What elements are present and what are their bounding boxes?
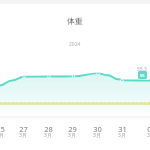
staticText: 55 <box>140 73 145 78</box>
staticText: 3月 <box>19 132 27 139</box>
staticText: 3月 <box>0 132 4 139</box>
staticText: 31 <box>118 124 127 134</box>
staticText: 30 <box>93 124 102 134</box>
staticText: 3月 <box>93 132 101 139</box>
staticText: 3月 <box>147 132 150 139</box>
button[interactable]: 55 <box>138 71 147 79</box>
staticText: 25 <box>0 124 5 134</box>
staticText: 28 <box>44 124 53 134</box>
staticText: 29 <box>68 124 77 134</box>
staticText: 27 <box>19 124 28 134</box>
staticText: 3月 <box>118 132 126 139</box>
staticText: 2024 <box>69 41 81 48</box>
staticText: 01 <box>147 124 150 134</box>
staticText: 3月 <box>44 132 52 139</box>
staticText: 55.3 <box>137 66 147 73</box>
staticText: 3月 <box>68 132 76 139</box>
staticText: 体重 <box>67 16 83 26</box>
